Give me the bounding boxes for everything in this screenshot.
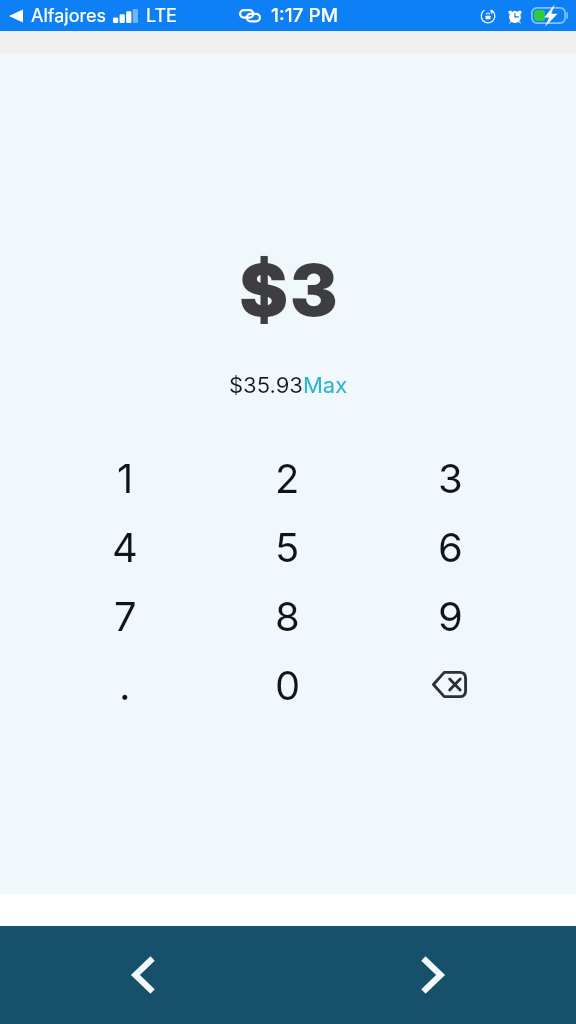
staticText: 4 <box>112 523 138 571</box>
staticText: 1 <box>117 454 134 502</box>
button[interactable]: 2 <box>206 443 369 512</box>
staticText: 5 <box>275 523 300 571</box>
staticText: Alfajores <box>31 5 106 27</box>
staticText: LTE <box>146 5 177 27</box>
staticText: 0 <box>275 661 301 709</box>
button[interactable]: Max <box>303 372 348 399</box>
staticText: 3 <box>438 454 463 502</box>
staticText: 7 <box>114 592 137 640</box>
button[interactable]: 9 <box>369 581 532 650</box>
button[interactable]: Backspace <box>369 650 532 719</box>
button[interactable]: Alfajores <box>9 0 106 31</box>
other: Backspace <box>433 671 468 698</box>
button[interactable]: 7 <box>44 581 206 650</box>
button[interactable]: 6 <box>369 512 532 581</box>
staticText: 9 <box>438 592 463 640</box>
button[interactable]: Previous <box>0 926 288 1024</box>
staticText: $35.93 <box>229 372 303 399</box>
button[interactable]: 5 <box>206 512 369 581</box>
button[interactable]: 8 <box>206 581 369 650</box>
button[interactable]: 4 <box>44 512 206 581</box>
staticText: 8 <box>275 592 300 640</box>
staticText: 6 <box>438 523 463 571</box>
button[interactable]: 0 <box>206 650 369 719</box>
staticText: 1:17 PM <box>271 4 338 27</box>
staticText: $3 <box>239 246 340 333</box>
staticText: . <box>119 661 131 709</box>
button[interactable]: Next <box>288 926 576 1024</box>
button[interactable]: 1 <box>44 443 206 512</box>
button[interactable]: 3 <box>369 443 532 512</box>
staticText: 2 <box>275 454 300 502</box>
button[interactable]: . <box>44 650 206 719</box>
